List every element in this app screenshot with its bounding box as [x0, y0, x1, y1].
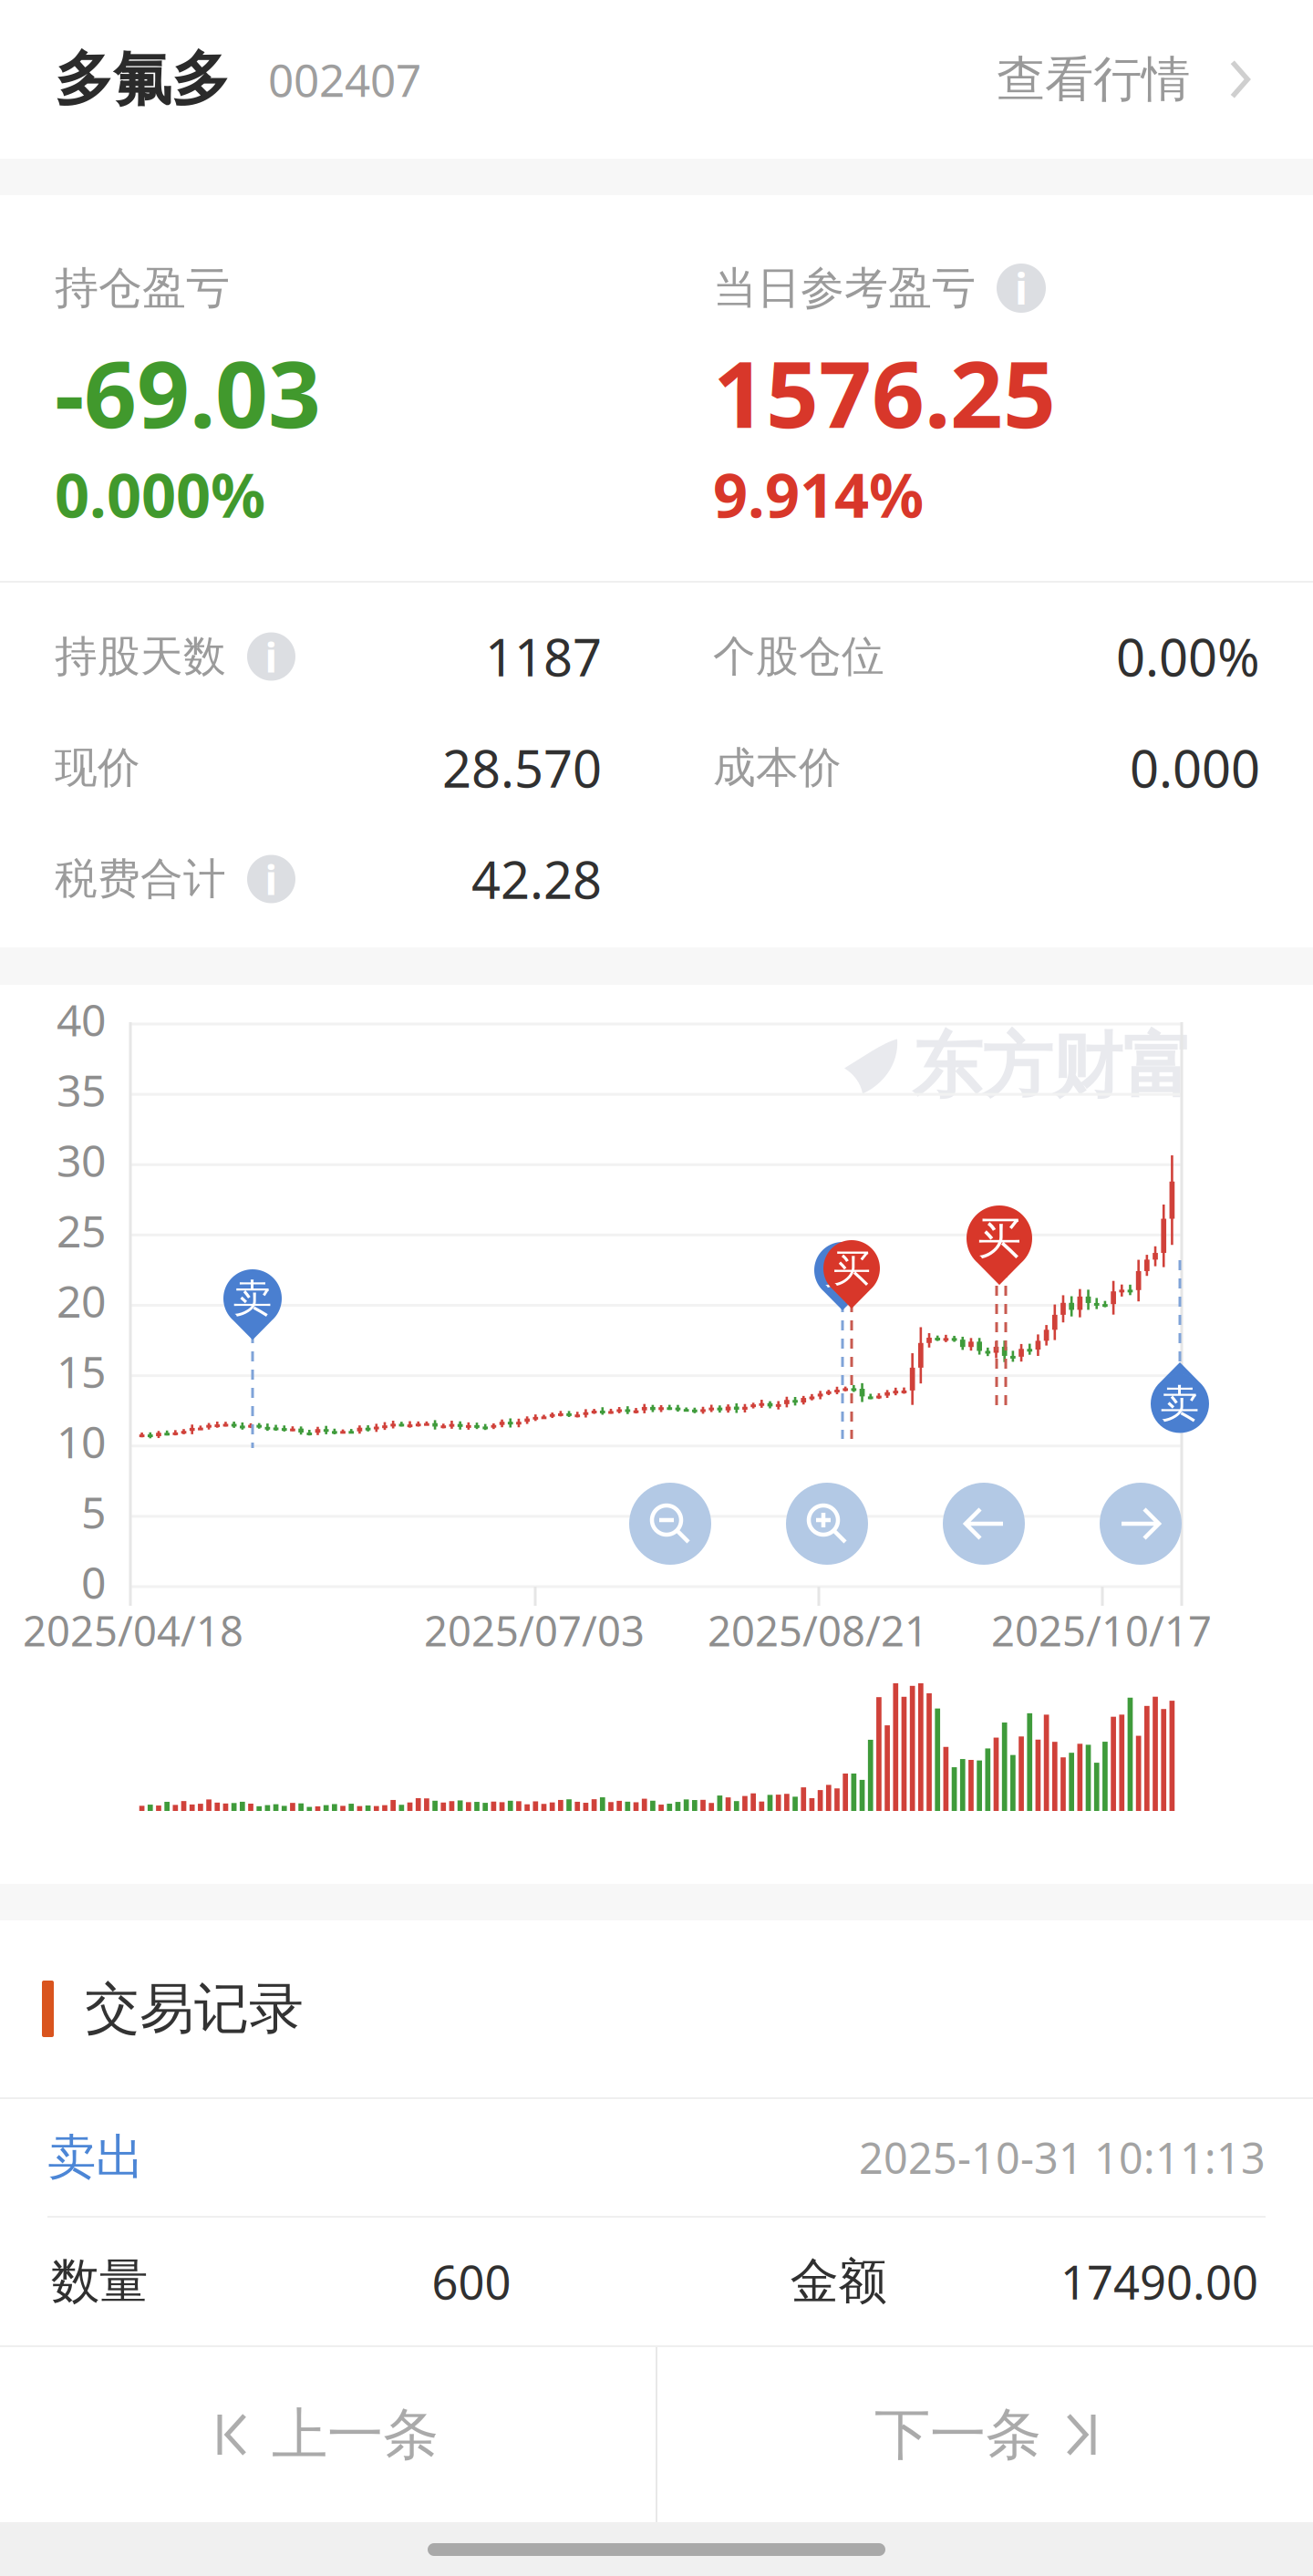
staticText: 卖出: [47, 2128, 144, 2187]
staticText: 28.570: [442, 734, 602, 802]
button[interactable]: 左移: [943, 1483, 1025, 1565]
staticText: 1576.25: [713, 331, 1056, 453]
staticText: 成本价: [713, 742, 842, 794]
staticText: 卖: [1160, 1380, 1199, 1428]
staticText: 买: [977, 1211, 1021, 1265]
staticText: 600: [432, 2251, 511, 2312]
staticText: 买: [833, 1245, 870, 1292]
staticText: 0.000: [1130, 734, 1260, 802]
staticText: 金额: [790, 2252, 887, 2311]
staticText: 查看行情: [997, 49, 1190, 109]
staticText: 2025/08/21: [708, 1603, 928, 1658]
staticText: 40: [57, 990, 106, 1048]
staticText: i: [265, 852, 278, 906]
button[interactable]: 放大: [786, 1483, 868, 1565]
staticText: 现价: [55, 742, 140, 794]
staticText: i: [265, 629, 278, 684]
staticText: i: [1015, 260, 1028, 316]
staticText: 0: [81, 1553, 106, 1611]
staticText: 上一条: [272, 2400, 439, 2469]
button[interactable]: 右移: [1100, 1483, 1182, 1565]
staticText: 1187: [485, 623, 602, 690]
staticText: 持仓盈亏: [55, 261, 230, 315]
staticText: 10: [57, 1412, 106, 1470]
staticText: 当日参考盈亏: [713, 261, 976, 315]
button[interactable]: 卖出: [0, 2099, 1313, 2216]
staticText: 个股仓位: [713, 630, 884, 683]
button[interactable]: 多氟多: [0, 0, 1313, 159]
staticText: 5: [81, 1483, 106, 1541]
staticText: 数量: [51, 2252, 148, 2311]
staticText: 买: [824, 1247, 861, 1293]
staticText: 税费合计: [55, 853, 226, 905]
staticText: 2025-10-31 10:11:13: [859, 2129, 1266, 2186]
staticText: 25: [57, 1201, 106, 1259]
staticText: 0.00%: [1116, 623, 1260, 690]
staticText: 2025/07/03: [424, 1603, 645, 1658]
staticText: 30: [57, 1131, 106, 1189]
staticText: 42.28: [471, 845, 602, 913]
staticText: 0.000%: [55, 454, 265, 535]
staticText: 2025/10/17: [991, 1603, 1212, 1658]
button[interactable]: 缩小: [629, 1483, 711, 1565]
staticText: 下一条: [874, 2400, 1041, 2469]
staticText: 002407: [268, 49, 421, 109]
staticText: 9.914%: [713, 454, 924, 535]
staticText: 东方财富: [912, 1023, 1193, 1110]
button[interactable]: 下一条: [657, 2347, 1313, 2522]
staticText: 35: [57, 1061, 106, 1119]
staticText: 2025/04/18: [23, 1603, 243, 1658]
staticText: 17490.00: [1060, 2251, 1258, 2312]
staticText: -69.03: [55, 331, 321, 453]
button[interactable]: 上一条: [0, 2347, 656, 2522]
staticText: 卖: [233, 1275, 272, 1322]
staticText: 多氟多: [55, 43, 230, 115]
staticText: 交易记录: [85, 1975, 304, 2042]
staticText: 20: [57, 1272, 106, 1330]
staticText: 持股天数: [55, 630, 226, 683]
staticText: 15: [57, 1342, 106, 1400]
